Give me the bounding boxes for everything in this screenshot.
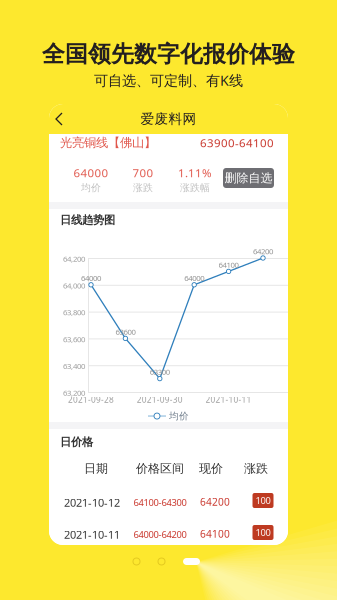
staticText: 63600 bbox=[115, 326, 135, 337]
staticText: 63900-64100 bbox=[200, 135, 274, 151]
staticText: 64000 bbox=[81, 273, 101, 283]
staticText: 全国领先数字化报价体验 bbox=[42, 40, 295, 69]
staticText: 光亮铜线【佛山】 bbox=[60, 135, 156, 150]
staticText: 63,600 bbox=[63, 334, 85, 344]
staticText: 63,800 bbox=[63, 307, 85, 318]
button[interactable]: 返回 bbox=[49, 104, 75, 134]
staticText: 现价 bbox=[199, 461, 223, 476]
staticText: 64000-64200 bbox=[133, 528, 186, 541]
staticText: 2021-09-30 bbox=[137, 394, 183, 405]
staticText: 涨跌 bbox=[133, 182, 153, 194]
staticText: 700 bbox=[132, 165, 153, 181]
staticText: 100 bbox=[255, 494, 270, 507]
staticText: 64100 bbox=[219, 259, 239, 270]
staticText: 2021-10-11 bbox=[206, 394, 252, 405]
button[interactable]: 删除自选 bbox=[223, 168, 274, 188]
staticText: 可自选、可定制、有K线 bbox=[94, 71, 243, 90]
staticText: 64200 bbox=[200, 495, 230, 509]
staticText: 64100-64300 bbox=[133, 496, 186, 509]
staticText: 日价格 bbox=[60, 435, 93, 449]
staticText: 价格区间 bbox=[136, 461, 184, 476]
staticText: 均价 bbox=[81, 182, 101, 194]
staticText: 100 bbox=[255, 526, 270, 539]
staticText: 64000 bbox=[184, 273, 204, 283]
staticText: 64200 bbox=[253, 246, 273, 256]
staticText: 64000 bbox=[73, 165, 108, 181]
staticText: 63,400 bbox=[63, 361, 85, 371]
staticText: 日期 bbox=[84, 461, 108, 476]
staticText: 64,200 bbox=[63, 253, 85, 264]
staticText: 删除自选 bbox=[224, 170, 272, 185]
staticText: 63,200 bbox=[63, 387, 85, 398]
staticText: 爱废料网 bbox=[140, 110, 196, 127]
staticText: 2021-10-12 bbox=[64, 495, 120, 510]
staticText: 2021-09-28 bbox=[68, 394, 114, 405]
staticText: 64100 bbox=[200, 527, 230, 541]
staticText: 日线趋势图 bbox=[60, 213, 115, 227]
staticText: 64,000 bbox=[63, 280, 85, 291]
staticText: 均价 bbox=[169, 410, 189, 422]
staticText: 1.11% bbox=[178, 165, 212, 181]
staticText: 涨跌幅 bbox=[180, 182, 210, 194]
staticText: 2021-10-11 bbox=[64, 527, 120, 542]
staticText: 涨跌 bbox=[244, 461, 268, 476]
staticText: 63300 bbox=[150, 367, 170, 377]
